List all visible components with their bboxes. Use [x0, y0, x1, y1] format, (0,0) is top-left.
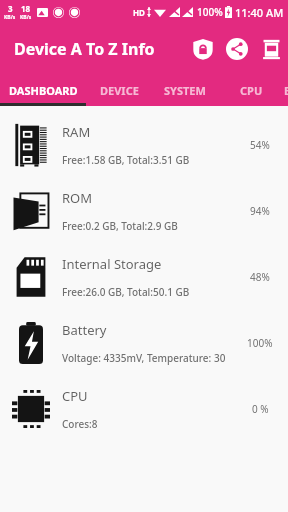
staticText: KB/s [4, 14, 16, 21]
staticText: Free:0.2 GB, Total:2.9 GB [62, 219, 178, 233]
button[interactable]: CPU [0, 376, 288, 442]
staticText: Cores:8 [62, 417, 98, 431]
button[interactable]: ROM [0, 178, 288, 244]
staticText: Voltage: 4335mV, Temperature: 30 ℃ [62, 351, 232, 365]
button[interactable]: DASHBOARD [0, 74, 86, 106]
staticText: Battery [62, 321, 107, 339]
staticText: ROM [62, 189, 93, 207]
button[interactable]: Battery [0, 310, 288, 376]
staticText: 100% [197, 5, 223, 19]
staticText: CPU [62, 387, 88, 405]
staticText: CPU [240, 83, 263, 98]
staticText: SYSTEM [164, 83, 206, 98]
staticText: 0 % [252, 402, 269, 416]
button[interactable]: SYSTEM [152, 74, 218, 106]
staticText: Free:1.58 GB, Total:3.51 GB [62, 153, 190, 167]
staticText: 54% [250, 138, 270, 152]
button[interactable]: DEVICE [86, 74, 152, 106]
staticText: 48% [250, 270, 270, 284]
staticText: Device A To Z Info [14, 38, 155, 60]
button[interactable]: Internal Storage [0, 244, 288, 310]
button[interactable]: Privacy [186, 32, 220, 66]
staticText: 3 [8, 3, 13, 14]
staticText: 11:40 AM [235, 5, 284, 20]
button[interactable]: Share [220, 32, 254, 66]
staticText: 18 [21, 3, 31, 14]
staticText: DASHBOARD [9, 83, 78, 98]
staticText: 100% [247, 336, 273, 350]
staticText: Internal Storage [62, 255, 162, 273]
staticText: KB/s [20, 14, 32, 21]
button[interactable]: RAM [0, 112, 288, 178]
staticText: 94% [250, 204, 270, 218]
button[interactable]: BAT [284, 74, 288, 106]
staticText: BAT [284, 83, 288, 98]
staticText: RAM [62, 123, 91, 141]
staticText: HD [133, 7, 145, 18]
staticText: Free:26.0 GB, Total:50.1 GB [62, 285, 190, 299]
button[interactable]: CPU [218, 74, 284, 106]
staticText: DEVICE [100, 83, 139, 98]
button[interactable]: Remove ads [254, 32, 288, 66]
